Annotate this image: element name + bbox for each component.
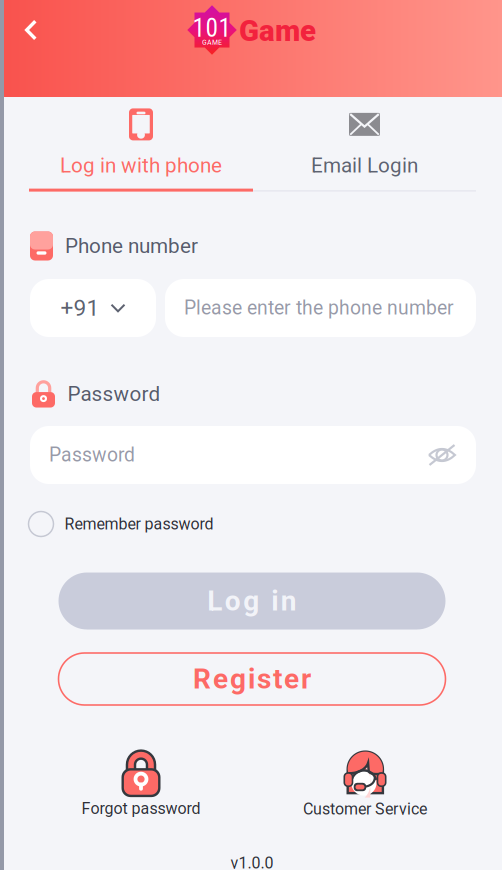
staticText: Log in	[207, 585, 297, 617]
button[interactable]: Password	[30, 426, 476, 484]
button[interactable]: Forgot password	[51, 752, 231, 818]
button[interactable]: Email Login	[253, 108, 476, 192]
staticText: Game	[239, 14, 316, 48]
staticText: Password	[67, 382, 160, 406]
staticText: Log in with phone	[60, 153, 222, 178]
staticText: Phone number	[65, 234, 198, 258]
staticText: Please enter the phone number	[184, 297, 454, 319]
button[interactable]: Log in	[58, 572, 445, 629]
staticText: Remember password	[64, 515, 213, 533]
button[interactable]: Remember password	[28, 511, 213, 536]
button[interactable]: Customer Service	[270, 752, 460, 818]
button[interactable]: Register	[58, 653, 445, 705]
staticText: v1.0.0	[230, 854, 273, 870]
button[interactable]: Back	[9, 8, 53, 52]
staticText: 101	[192, 13, 231, 43]
staticText: Password	[49, 444, 135, 466]
staticText: GAME	[202, 37, 222, 47]
button[interactable]: +91	[30, 279, 156, 337]
staticText: Register	[193, 663, 311, 695]
staticText: Forgot password	[81, 799, 200, 818]
button[interactable]: Please enter the phone number	[165, 279, 476, 337]
button[interactable]: Log in with phone	[29, 108, 253, 192]
staticText: +91	[60, 295, 99, 321]
staticText: Email Login	[311, 153, 418, 178]
staticText: Customer Service	[303, 800, 427, 818]
